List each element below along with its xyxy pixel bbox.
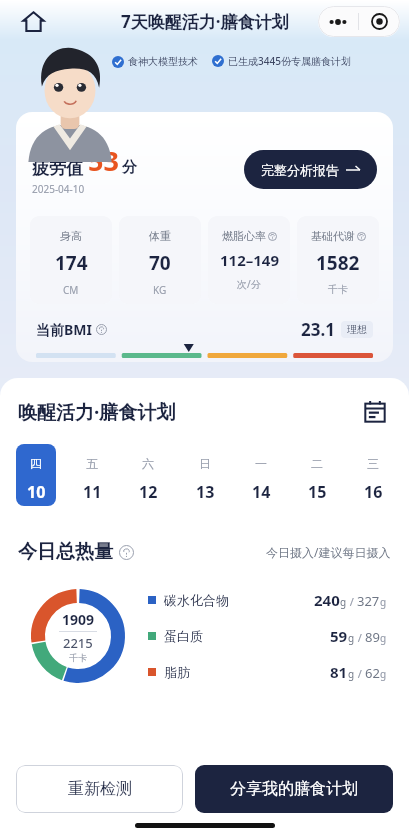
button[interactable]: 燃脂心率 — [208, 216, 290, 304]
staticText: 脂肪 — [164, 664, 190, 680]
staticText: CM — [63, 283, 79, 297]
button[interactable]: 一 — [241, 444, 281, 506]
button[interactable]: 四 — [16, 444, 56, 506]
staticText: 次/分 — [237, 277, 261, 291]
button[interactable]: Home — [16, 4, 50, 38]
button[interactable]: 基础代谢 — [297, 216, 379, 304]
button[interactable]: 分享我的膳食计划 — [195, 765, 393, 813]
staticText: / — [355, 630, 365, 645]
staticText: 62 — [365, 664, 380, 682]
staticText: 碳水化合物 — [164, 592, 229, 608]
button[interactable]: 五 — [72, 444, 112, 506]
button[interactable]: 日 — [185, 444, 225, 506]
staticText: 基础代谢 — [311, 229, 355, 243]
button[interactable]: 体重 — [119, 216, 201, 304]
button[interactable]: 重新检测 — [16, 765, 183, 813]
staticText: 327 — [357, 592, 380, 610]
staticText: g — [380, 631, 387, 645]
staticText: 11 — [83, 481, 102, 503]
staticText: g — [380, 667, 387, 681]
staticText: 今日总热量 — [18, 540, 113, 564]
staticText: 1582 — [316, 250, 360, 276]
staticText: 食神大模型技术 — [128, 55, 198, 68]
staticText: 燃脂心率 — [222, 229, 266, 243]
staticText: / — [347, 594, 357, 609]
staticText: 理想 — [347, 323, 367, 336]
staticText: 身高 — [60, 229, 82, 243]
button[interactable]: Calendar — [359, 396, 391, 428]
button[interactable]: Close — [359, 6, 400, 37]
staticText: 分 — [122, 158, 137, 177]
staticText: 重新检测 — [68, 779, 132, 799]
staticText: 分享我的膳食计划 — [230, 779, 358, 799]
staticText: 1909 — [62, 610, 95, 629]
staticText: 当前BMI — [36, 320, 92, 339]
button[interactable]: 三 — [353, 444, 393, 506]
staticText: 7天唤醒活力·膳食计划 — [121, 10, 289, 33]
staticText: 六 — [142, 456, 154, 471]
staticText: 千卡 — [328, 283, 348, 296]
staticText: 体重 — [149, 229, 171, 243]
staticText: 二 — [311, 456, 323, 471]
staticText: g — [348, 667, 355, 681]
staticText: 疲劳值 — [32, 158, 83, 179]
staticText: 70 — [149, 250, 171, 276]
staticText: 15 — [308, 481, 327, 503]
staticText: 今日摄入/建议每日摄入 — [266, 544, 391, 560]
staticText: 13 — [196, 481, 215, 503]
button[interactable]: 身高 — [30, 216, 112, 304]
staticText: 14 — [252, 481, 271, 503]
button[interactable]: 二 — [297, 444, 337, 506]
staticText: 59 — [330, 626, 348, 646]
staticText: 已生成3445份专属膳食计划 — [228, 54, 351, 68]
staticText: 240 — [314, 590, 340, 610]
staticText: 唤醒活力·膳食计划 — [18, 399, 176, 425]
button[interactable]: 完整分析报告 — [244, 150, 377, 189]
staticText: 16 — [364, 481, 383, 503]
staticText: 2025-04-10 — [32, 182, 85, 196]
staticText: 一 — [255, 456, 267, 471]
staticText: 12 — [139, 481, 158, 503]
staticText: 千卡 — [69, 652, 87, 663]
staticText: 五 — [86, 456, 98, 471]
staticText: 112–149 — [220, 250, 279, 270]
staticText: g — [340, 595, 347, 609]
staticText: 完整分析报告 — [261, 162, 339, 178]
staticText: 89 — [365, 628, 380, 646]
button[interactable]: 六 — [128, 444, 168, 506]
staticText: 日 — [199, 456, 211, 471]
staticText: 四 — [30, 456, 42, 471]
staticText: g — [348, 631, 355, 645]
staticText: 三 — [367, 456, 379, 471]
staticText: 23.1 — [301, 318, 335, 341]
staticText: 81 — [330, 662, 348, 682]
staticText: KG — [153, 283, 167, 297]
staticText: 2215 — [63, 634, 93, 652]
button[interactable]: More — [318, 6, 358, 37]
staticText: 蛋白质 — [164, 628, 203, 644]
staticText: 10 — [27, 481, 46, 503]
staticText: g — [380, 595, 387, 609]
staticText: 53 — [88, 142, 119, 179]
staticText: / — [355, 666, 365, 681]
staticText: 174 — [55, 250, 88, 276]
